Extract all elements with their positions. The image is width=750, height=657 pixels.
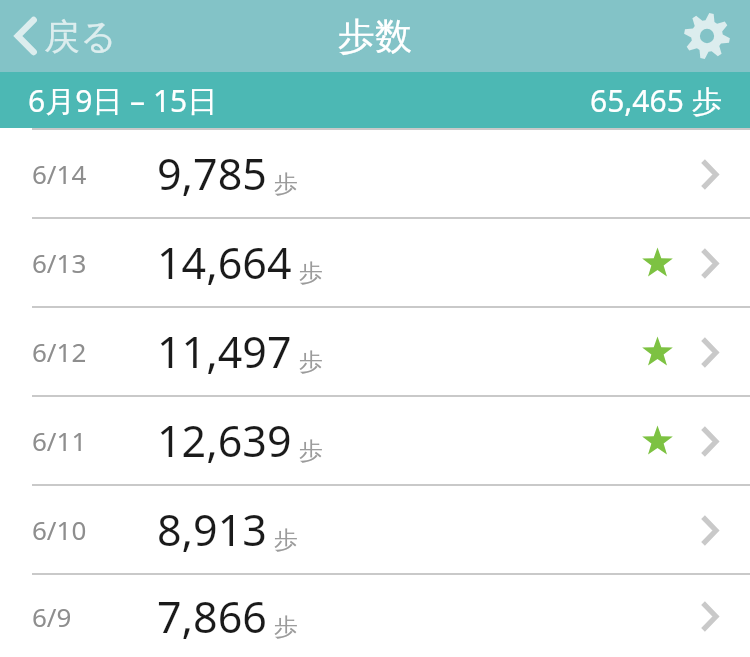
staticText: 65,465 歩 bbox=[590, 80, 722, 121]
staticText: 歩 bbox=[274, 169, 298, 199]
staticText: 6/11 bbox=[32, 423, 87, 458]
button[interactable]: 6/9 bbox=[0, 575, 750, 657]
staticText: 11,497 bbox=[157, 322, 292, 381]
button[interactable]: 6/11 bbox=[0, 397, 750, 484]
staticText: 8,913 bbox=[157, 500, 267, 559]
staticText: 6/9 bbox=[32, 599, 72, 634]
staticText: 12,639 bbox=[157, 411, 292, 470]
button[interactable]: 6/10 bbox=[0, 486, 750, 573]
staticText: 6/13 bbox=[32, 245, 87, 280]
staticText: 歩 bbox=[274, 612, 298, 642]
staticText: 7,866 bbox=[157, 587, 267, 646]
staticText: 歩 bbox=[274, 525, 298, 555]
staticText: 14,664 bbox=[157, 233, 292, 292]
staticText: 歩 bbox=[299, 258, 323, 288]
staticText: 6月9日 – 15日 bbox=[28, 80, 218, 121]
staticText: 歩数 bbox=[338, 13, 412, 60]
button[interactable]: 戻る bbox=[0, 0, 131, 72]
staticText: 6/14 bbox=[32, 156, 87, 191]
button[interactable]: 6/12 bbox=[0, 308, 750, 395]
button[interactable]: 6/13 bbox=[0, 219, 750, 306]
staticText: 6/10 bbox=[32, 512, 87, 547]
staticText: 歩 bbox=[299, 347, 323, 377]
staticText: 6/12 bbox=[32, 334, 87, 369]
staticText: 戻る bbox=[44, 14, 117, 59]
button[interactable]: 6/14 bbox=[0, 130, 750, 217]
button[interactable]: Settings bbox=[664, 0, 750, 72]
staticText: 歩 bbox=[299, 436, 323, 466]
staticText: 9,785 bbox=[157, 144, 267, 203]
